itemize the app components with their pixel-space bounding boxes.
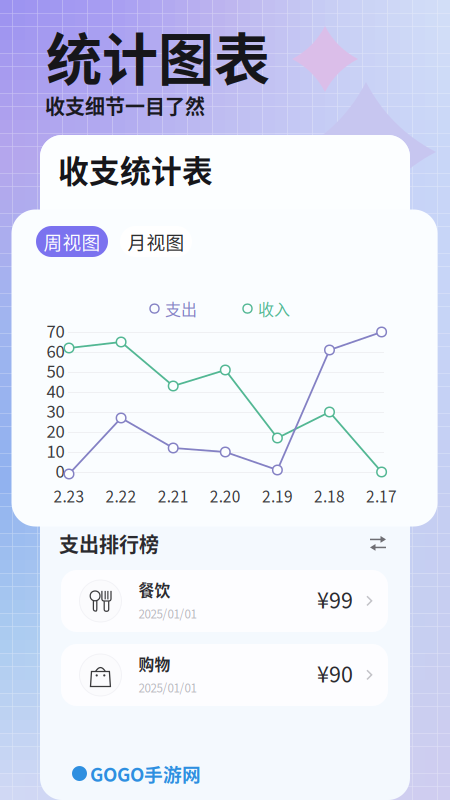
staticText: 购物 <box>138 652 170 675</box>
staticText: 10 <box>46 439 64 465</box>
staticText: 2.18 <box>314 485 345 509</box>
staticText: 70 <box>46 319 64 345</box>
staticText: 周视图 <box>43 228 100 255</box>
staticText: ¥99 <box>317 584 353 618</box>
staticText: 0 <box>55 459 64 485</box>
staticText: 2.22 <box>106 485 137 509</box>
staticText: 统计图表 <box>46 15 270 96</box>
staticText: 20 <box>46 419 64 445</box>
staticText: 2.21 <box>158 485 189 509</box>
staticText: 2.17 <box>366 485 397 509</box>
staticText: 30 <box>46 399 64 425</box>
staticText: 2.19 <box>262 485 293 509</box>
staticText: 支出排行榜 <box>59 529 159 558</box>
button[interactable]: 排序 <box>363 529 393 558</box>
staticText: 餐饮 <box>138 578 170 601</box>
staticText: GOGO手游网 <box>90 760 201 787</box>
staticText: 2025/01/01 <box>138 605 196 624</box>
button[interactable]: 餐饮 <box>61 570 388 632</box>
staticText: 支出 <box>165 297 197 320</box>
button[interactable]: 购物 <box>61 644 388 706</box>
staticText: ¥90 <box>317 658 353 692</box>
staticText: 50 <box>46 359 64 385</box>
staticText: 40 <box>46 379 64 405</box>
button[interactable]: 周视图 <box>36 226 108 257</box>
staticText: 月视图 <box>127 228 184 255</box>
staticText: 2.23 <box>53 485 84 509</box>
staticText: 2025/01/01 <box>138 679 196 698</box>
staticText: 收支细节一目了然 <box>45 91 205 120</box>
staticText: 收入 <box>258 297 290 320</box>
staticText: 2.20 <box>210 485 241 509</box>
button[interactable]: 月视图 <box>120 226 192 257</box>
staticText: 60 <box>46 339 64 365</box>
staticText: 收支统计表 <box>58 147 213 191</box>
